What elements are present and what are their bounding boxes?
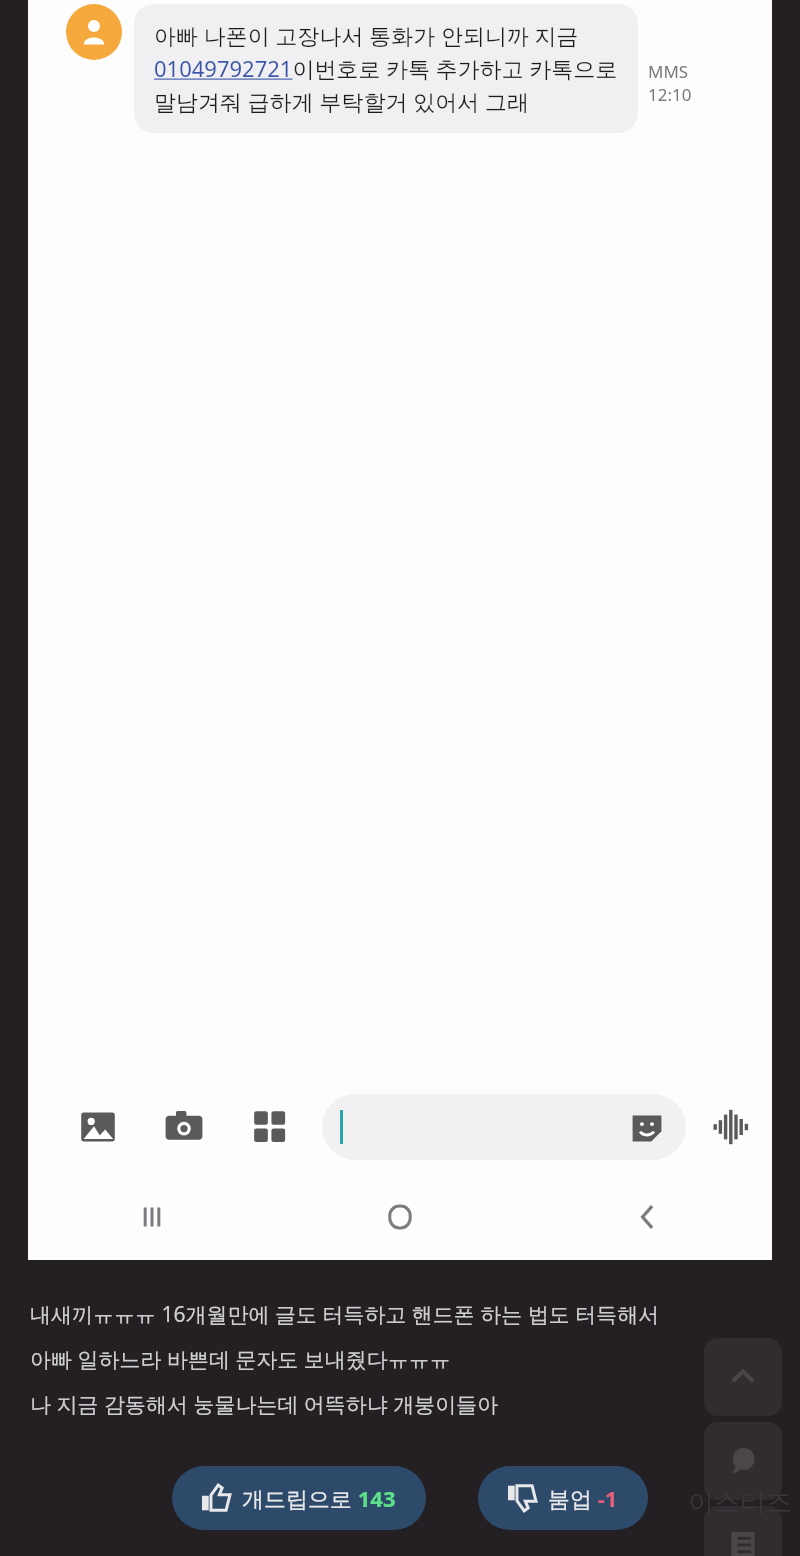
button[interactable]: Contact avatar <box>66 4 122 60</box>
button[interactable]: Recents <box>28 1174 276 1260</box>
button[interactable]: 붐업 -1 <box>478 1466 648 1530</box>
staticText: MMS <box>648 60 689 83</box>
button[interactable]: Post list <box>704 1506 782 1556</box>
staticText: 12:10 <box>648 83 692 106</box>
button[interactable]: 개드립으로 143 <box>172 1466 426 1530</box>
button[interactable]: Stickers <box>626 1106 668 1148</box>
staticText: 내새끼ㅠㅠㅠ 16개월만에 글도 터득하고 핸드폰 하는 법도 터득해서 <box>30 1300 660 1329</box>
button[interactable]: Camera <box>158 1101 210 1153</box>
button[interactable]: Scroll to top <box>704 1338 782 1416</box>
staticText: 아빠 일하느라 바쁜데 문자도 보내줬다ㅠㅠㅠ <box>30 1345 451 1374</box>
staticText: 개드립으로 143 <box>242 1483 396 1513</box>
button[interactable]: 아빠 나폰이 고장나서 통화가 안되니까 지금 01049792721이번호로 … <box>134 4 638 133</box>
button[interactable]: Gallery <box>72 1101 124 1153</box>
button[interactable]: Voice message <box>704 1101 756 1153</box>
button[interactable]: Stickers <box>322 1094 686 1160</box>
staticText: 이스티즈 <box>688 1486 792 1519</box>
staticText: 2021년 1월 22일 금요일 <box>298 18 503 44</box>
button[interactable]: More apps <box>244 1101 296 1153</box>
button[interactable]: Home <box>276 1174 524 1260</box>
button[interactable]: Comments <box>704 1422 782 1500</box>
button[interactable]: Back <box>524 1174 772 1260</box>
staticText: 나 지금 감동해서 눙물나는데 어뜩하냐 개붕이들아 <box>30 1390 499 1419</box>
staticText: 붐업 -1 <box>548 1483 618 1513</box>
staticText: 아빠 나폰이 고장나서 통화가 안되니까 지금 01049792721이번호로 … <box>154 20 618 117</box>
